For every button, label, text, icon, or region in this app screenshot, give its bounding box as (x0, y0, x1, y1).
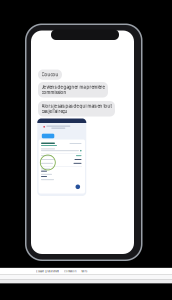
staticText: Coucou (41, 72, 58, 77)
staticText: Tarifs (81, 270, 87, 273)
staticText: Connexion (64, 270, 76, 273)
staticText: Je viens de gagner ma première commissio… (41, 85, 104, 95)
staticText: Essayer gratuitement (36, 270, 59, 273)
staticText: Alors je sais pas de qui mais en tout ca… (41, 104, 111, 114)
